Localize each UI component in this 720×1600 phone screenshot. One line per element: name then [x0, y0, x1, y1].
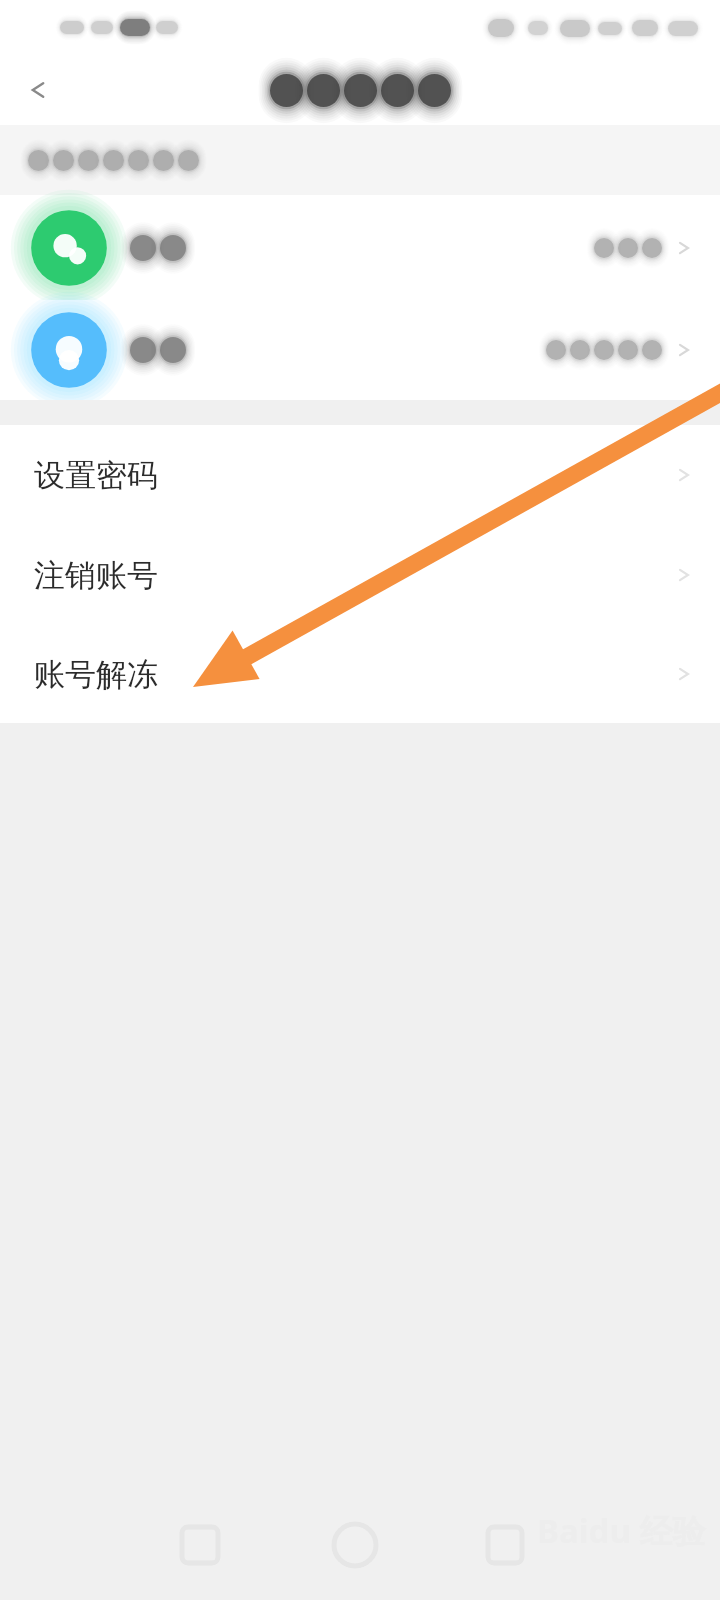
- staticText: 设置密码: [34, 456, 158, 495]
- button[interactable]: [0, 300, 720, 400]
- button[interactable]: Back: [14, 66, 62, 114]
- button[interactable]: Home: [300, 1510, 380, 1580]
- button[interactable]: Back: [450, 1510, 530, 1580]
- staticText: 注销账号: [34, 556, 158, 595]
- button[interactable]: Recents: [150, 1510, 230, 1580]
- button[interactable]: [0, 195, 720, 300]
- button[interactable]: 注销账号: [0, 525, 720, 625]
- button[interactable]: 设置密码: [0, 425, 720, 525]
- staticText: 账号解冻: [34, 655, 158, 694]
- button[interactable]: 账号解冻: [0, 625, 720, 723]
